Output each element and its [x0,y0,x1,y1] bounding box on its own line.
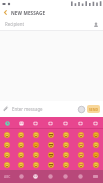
staticText: NEW MESSAGE [11,10,46,16]
button[interactable]: Emoji 7 [0,140,14,150]
staticText: Enter message [12,106,43,112]
button[interactable]: Emoji 8 [14,140,28,150]
button[interactable]: Emoji [75,103,87,115]
button[interactable]: Stickers [43,118,58,128]
button[interactable]: Add contact [90,19,101,30]
button[interactable]: Emoji 6 [88,130,103,140]
button[interactable]: Emoji 3 [43,130,58,140]
button[interactable]: Emoji 12 [73,140,88,150]
button[interactable]: Emoji 14 [0,150,14,160]
button[interactable]: Emoji 25 [58,160,73,170]
button[interactable]: Emoji 11 [58,140,73,150]
button[interactable]: Emoji 13 [88,140,103,150]
button[interactable]: Emoji 27 [88,160,103,170]
button[interactable]: Images [58,118,73,128]
button[interactable]: Emoji 18 [58,150,73,160]
button[interactable]: Emoji 21 [0,160,14,170]
button[interactable]: Emoji 9 [28,140,43,150]
staticText: Recipient [5,21,25,27]
button[interactable]: Emoji 23 [28,160,43,170]
button[interactable]: Emoji 19 [73,150,88,160]
staticText: SEND [89,107,99,112]
button[interactable]: Emoji 0 [0,130,14,140]
button[interactable]: Emoji 20 [88,150,103,160]
button[interactable]: People [58,170,73,183]
button[interactable]: Attach [0,103,12,115]
button[interactable]: Recent [14,170,28,183]
button[interactable]: SEND [87,105,100,113]
button[interactable]: Emoji 16 [28,150,43,160]
button[interactable]: Smileys [14,118,28,128]
button[interactable]: Emoji 26 [73,160,88,170]
button[interactable]: Recipient [0,18,103,30]
button[interactable]: Emoji 4 [58,130,73,140]
button[interactable]: Emoji 22 [14,160,28,170]
button[interactable]: Back [0,7,11,18]
button[interactable]: Emoji 1 [14,130,28,140]
button[interactable]: ABC [0,170,14,183]
button[interactable]: Nature [73,170,88,183]
button[interactable]: Delete [88,170,103,183]
button[interactable]: Emoji 17 [43,150,58,160]
button[interactable]: Settings [43,170,58,183]
button[interactable]: Emoji [28,170,43,183]
button[interactable]: Emoji 5 [73,130,88,140]
button[interactable]: Text [28,118,43,128]
button[interactable]: Gifs [73,118,88,128]
button[interactable]: Emoji 2 [28,130,43,140]
button[interactable]: Emoji 24 [43,160,58,170]
button[interactable]: Settings [88,118,103,128]
button[interactable]: Emoji 10 [43,140,58,150]
button[interactable]: Recent [0,118,14,128]
staticText: ABC [4,175,11,179]
button[interactable]: Emoji 15 [14,150,28,160]
